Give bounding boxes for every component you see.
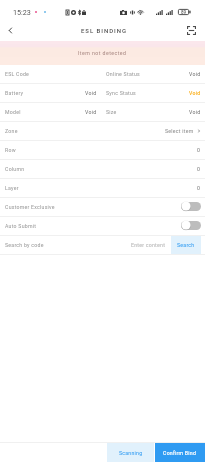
staticText: 15:23: [13, 8, 31, 16]
staticText: Column: [5, 166, 25, 172]
staticText: Void: [189, 90, 201, 96]
button[interactable]: Scan barcode: [181, 20, 202, 41]
button[interactable]: Confirm Bind: [155, 443, 205, 462]
staticText: Sync Status: [106, 90, 136, 96]
staticText: Scanning: [119, 450, 143, 456]
staticText: 0: [197, 185, 201, 191]
button[interactable]: Search: [171, 236, 201, 254]
staticText: Search: [177, 242, 195, 248]
staticText: 89: [181, 10, 187, 15]
staticText: Customer Exclusive: [5, 204, 55, 210]
staticText: Size: [106, 109, 117, 115]
staticText: Model: [5, 109, 21, 115]
staticText: Item not detected: [78, 50, 127, 56]
staticText: ESL BINDING: [81, 27, 127, 34]
staticText: Select item: [165, 128, 194, 134]
staticText: Zone: [5, 128, 18, 134]
staticText: Void: [85, 109, 97, 115]
button[interactable]: Back: [0, 20, 21, 41]
staticText: Search by code: [5, 242, 44, 248]
staticText: 0: [197, 166, 201, 172]
staticText: Layer: [5, 185, 19, 191]
staticText: Confirm Bind: [163, 450, 197, 456]
staticText: ESL Code: [5, 71, 30, 77]
staticText: Row: [5, 147, 16, 153]
button[interactable]: Zone: [0, 122, 205, 140]
staticText: Void: [189, 109, 201, 115]
staticText: Enter content: [131, 242, 166, 248]
staticText: Void: [85, 90, 97, 96]
staticText: Online Status: [106, 71, 140, 77]
button[interactable]: Scanning: [107, 443, 154, 462]
staticText: Battery: [5, 90, 24, 96]
button[interactable]: Customer Exclusive: [181, 201, 201, 211]
button[interactable]: Auto Submit: [181, 220, 201, 230]
staticText: Void: [189, 71, 201, 77]
staticText: 0: [197, 147, 201, 153]
staticText: Auto Submit: [5, 223, 37, 229]
